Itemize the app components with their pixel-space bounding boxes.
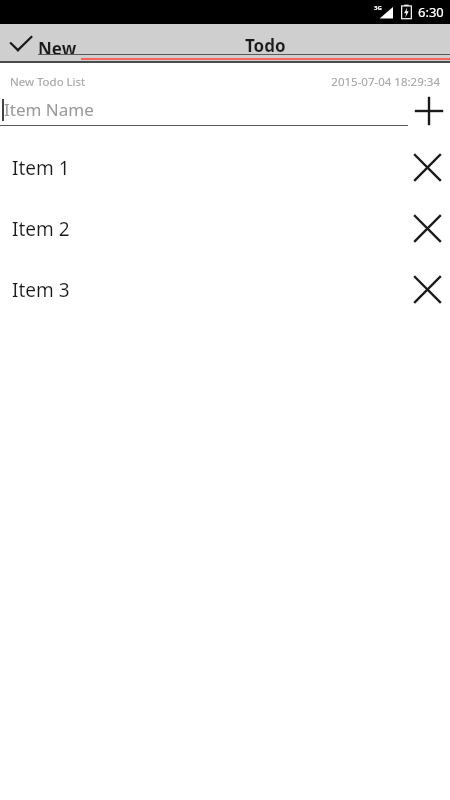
button[interactable]: Add item (408, 95, 450, 126)
button[interactable]: Remove Item 3 (404, 259, 450, 320)
button[interactable]: New (38, 24, 450, 63)
button[interactable]: Item 3 (0, 259, 450, 320)
button[interactable]: Remove Item 1 (404, 137, 450, 198)
staticText: 2015-07-04 18:29:34 (331, 74, 440, 90)
button[interactable]: Item Name (0, 95, 408, 126)
staticText: Item 2 (12, 216, 404, 242)
staticText: 3G (374, 4, 382, 12)
button[interactable]: Item 2 (0, 198, 450, 259)
button[interactable]: Remove Item 2 (404, 198, 450, 259)
staticText: 6:30 (418, 3, 444, 21)
button[interactable]: Save todo list (6, 29, 36, 59)
button[interactable]: Item 1 (0, 137, 450, 198)
staticText: New Todo List (10, 74, 86, 90)
staticText: New (38, 37, 81, 60)
staticText: Item 1 (12, 155, 404, 181)
staticText: Todo (245, 34, 286, 57)
staticText: Item Name (4, 98, 94, 121)
staticText: Item 3 (12, 277, 404, 303)
